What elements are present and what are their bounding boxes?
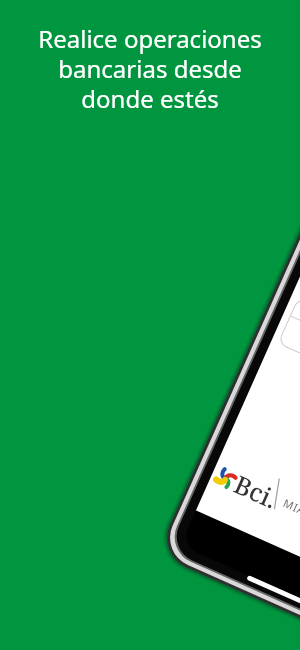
staticText: Realice operaciones bancarias desde dond…	[38, 22, 262, 115]
staticText: MIAMI	[281, 495, 300, 524]
staticText: Bci.	[229, 467, 283, 516]
